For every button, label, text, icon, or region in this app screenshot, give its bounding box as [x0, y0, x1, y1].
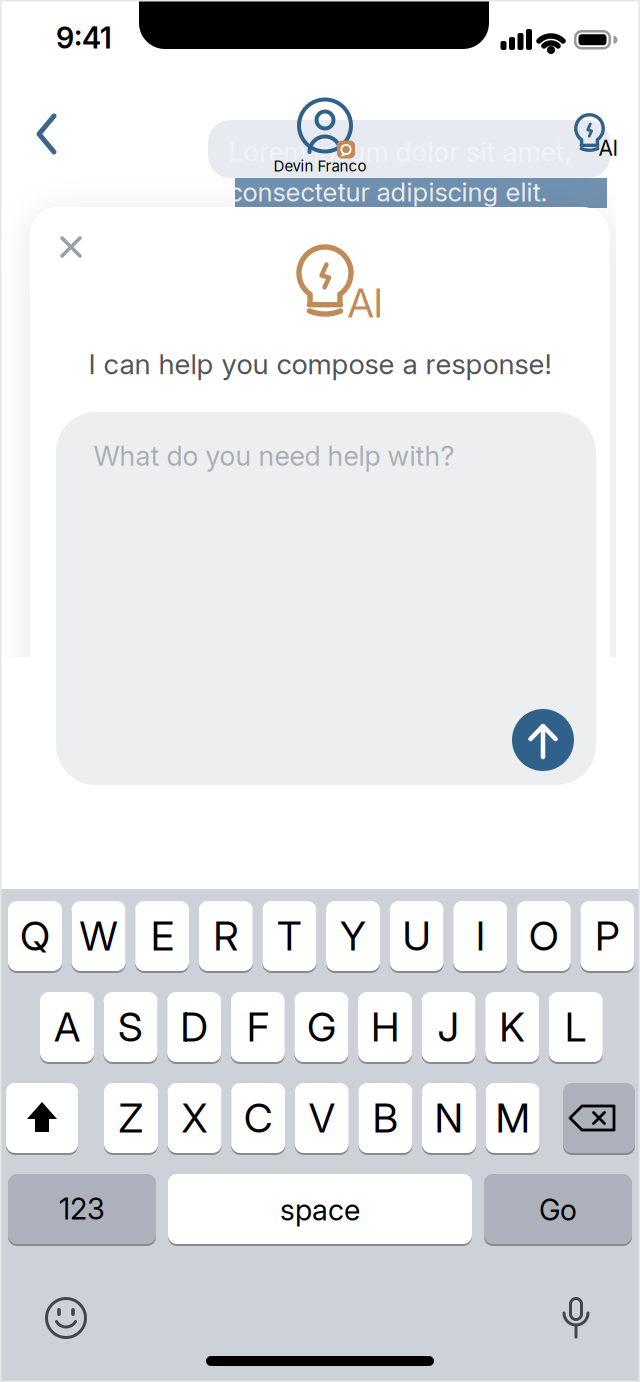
staticText: H — [371, 1003, 399, 1051]
staticText: G — [307, 1003, 336, 1051]
staticText: F — [247, 1003, 269, 1051]
staticText: 123 — [59, 1192, 105, 1226]
staticText: M — [496, 1094, 530, 1142]
staticText: V — [309, 1094, 335, 1142]
staticText: space — [280, 1193, 360, 1227]
staticText: I — [476, 912, 485, 960]
staticText: C — [244, 1094, 273, 1142]
staticText: Lorem ipsum dolor sit amet, — [228, 136, 571, 168]
staticText: K — [499, 1003, 525, 1051]
staticText: AI — [598, 136, 618, 160]
staticText: U — [403, 912, 431, 960]
staticText: Go — [539, 1193, 577, 1227]
staticText: B — [372, 1094, 398, 1142]
staticText: L — [565, 1003, 587, 1051]
staticText: consectetur adipiscing elit. — [228, 177, 547, 207]
staticText: R — [213, 912, 238, 960]
staticText: N — [434, 1094, 463, 1142]
staticText: E — [151, 912, 174, 960]
staticText: A — [54, 1003, 80, 1051]
staticText: What do you need help with? — [93, 440, 454, 472]
staticText: I can help you compose a response! — [88, 347, 551, 380]
staticText: 9:41 — [56, 21, 112, 55]
staticText: Z — [118, 1094, 143, 1142]
staticText: P — [595, 912, 620, 960]
staticText: D — [180, 1003, 208, 1051]
staticText: Y — [340, 912, 366, 960]
staticText: AI — [347, 279, 382, 327]
staticText: Q — [20, 912, 50, 960]
staticText: Devin Franco — [273, 157, 366, 175]
staticText: O — [529, 912, 559, 960]
staticText: S — [118, 1003, 143, 1051]
staticText: J — [438, 1003, 460, 1051]
staticText: X — [182, 1094, 208, 1142]
staticText: W — [80, 912, 118, 960]
staticText: T — [277, 912, 302, 960]
